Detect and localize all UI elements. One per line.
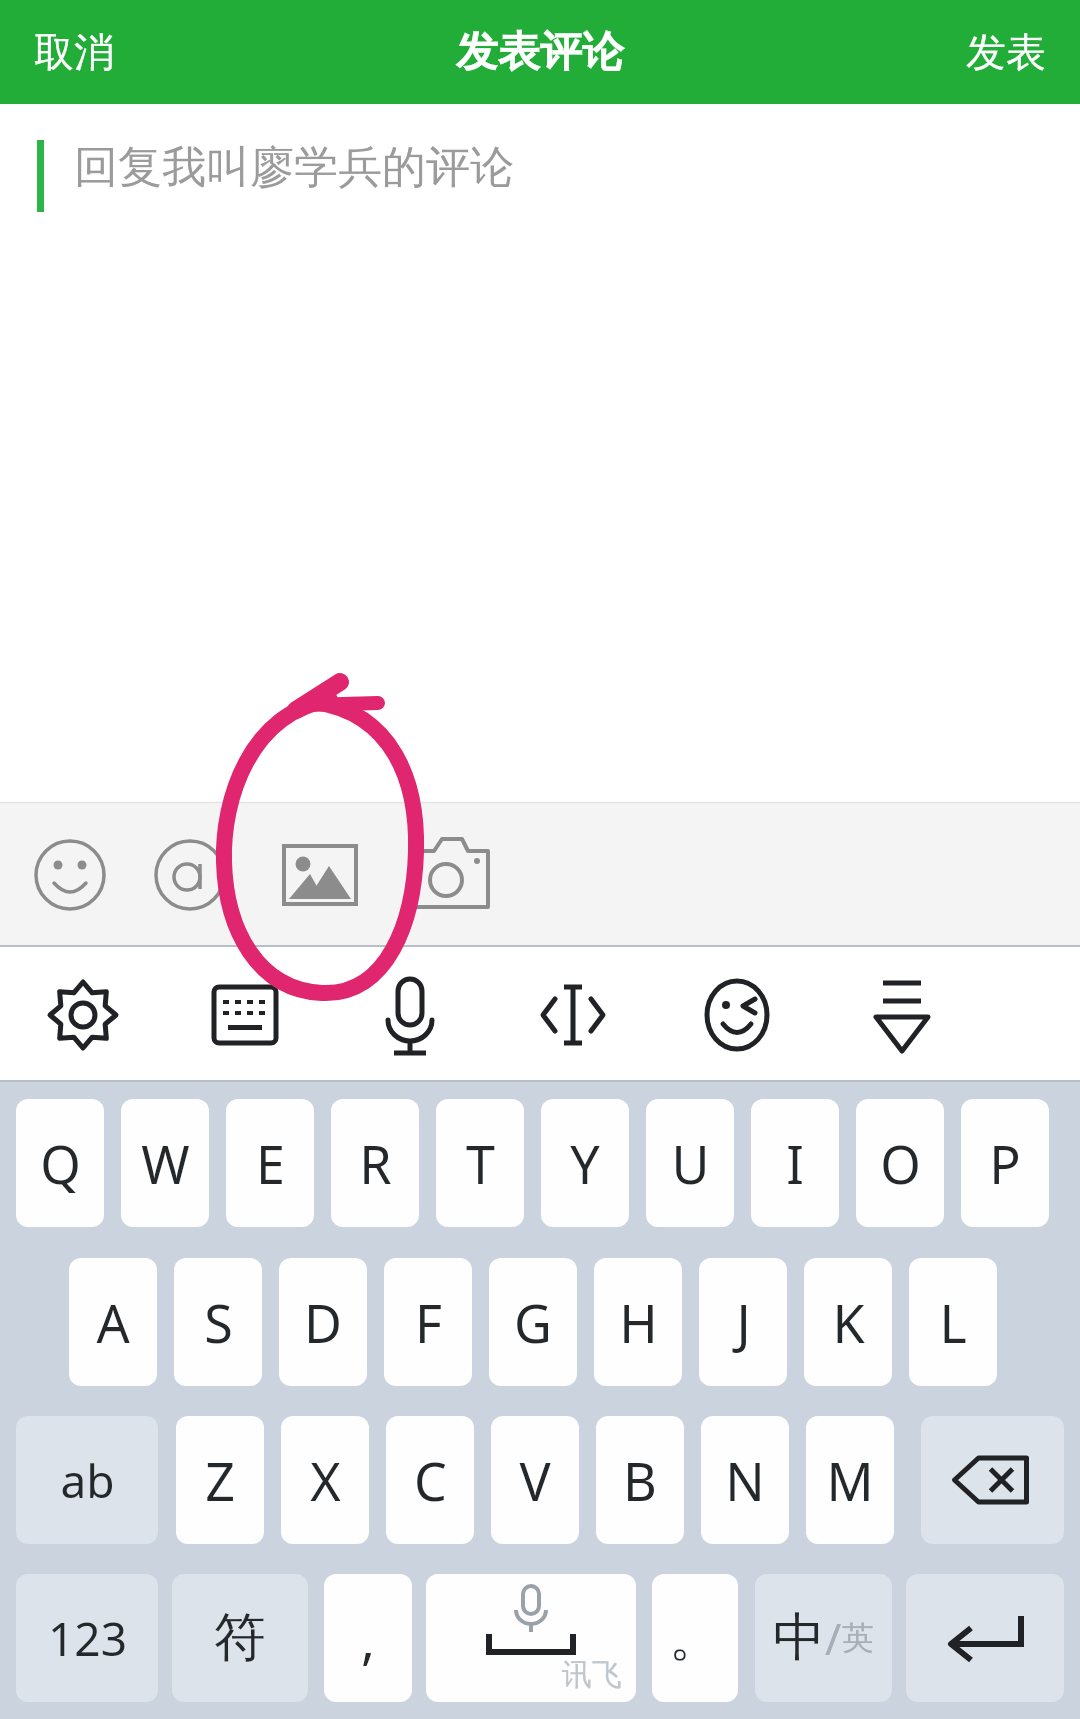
staticText: 英 [842,1618,874,1658]
staticText: R [359,1128,392,1199]
button[interactable]: Voice input [355,960,465,1070]
button[interactable]: Add image [268,823,372,927]
button[interactable]: W [121,1099,209,1227]
button[interactable]: 。 [652,1574,738,1702]
staticText: M [826,1445,874,1516]
staticText: V [519,1445,551,1516]
staticText: E [256,1128,285,1199]
staticText: Q [40,1128,81,1199]
staticText: 中 [773,1605,825,1671]
button[interactable]: F [384,1258,472,1386]
staticText: 123 [48,1607,127,1670]
button[interactable]: Emoji [18,823,122,927]
button[interactable]: H [594,1258,682,1386]
staticText: A [96,1287,130,1358]
button[interactable]: Enter [906,1574,1064,1702]
staticText: Z [205,1445,235,1516]
button[interactable]: Chinese English toggle [755,1574,892,1702]
staticText: , [361,1603,375,1674]
staticText: 取消 [34,27,114,77]
staticText: 发表评论 [456,26,624,79]
staticText: O [880,1128,921,1199]
button[interactable]: U [646,1099,734,1227]
staticText: 符 [214,1605,266,1671]
staticText: H [619,1287,658,1358]
staticText: J [736,1287,751,1358]
button[interactable]: 回复我叫廖学兵的评论 [0,104,1080,264]
button[interactable]: K [804,1258,892,1386]
button[interactable]: L [909,1258,997,1386]
button[interactable]: V [491,1416,579,1544]
button[interactable]: T [436,1099,524,1227]
button[interactable]: P [961,1099,1049,1227]
staticText: I [786,1128,804,1199]
staticText: C [414,1445,447,1516]
button[interactable]: 123 [16,1574,158,1702]
staticText: S [204,1287,233,1358]
button[interactable]: Q [16,1099,104,1227]
staticText: F [415,1287,442,1358]
staticText: L [939,1287,967,1358]
button[interactable]: I [751,1099,839,1227]
staticText: N [725,1445,765,1516]
button[interactable]: , [324,1574,412,1702]
button[interactable]: Z [176,1416,264,1544]
button[interactable]: D [279,1258,367,1386]
staticText: 发表 [966,27,1046,77]
staticText: P [989,1128,1021,1199]
button[interactable]: O [856,1099,944,1227]
button[interactable]: Space [426,1574,636,1702]
staticText: U [671,1128,710,1199]
button[interactable]: Camera [398,823,502,927]
button[interactable]: C [386,1416,474,1544]
button[interactable]: X [281,1416,369,1544]
staticText: T [466,1128,495,1199]
button[interactable]: G [489,1258,577,1386]
button[interactable]: 发表 [942,13,1070,91]
button[interactable]: Backspace [921,1416,1064,1544]
button[interactable]: A [69,1258,157,1386]
staticText: W [141,1128,190,1199]
staticText: 讯飞 [562,1656,622,1694]
staticText: X [310,1445,341,1516]
staticText: 。 [669,1605,721,1671]
staticText: Y [570,1128,600,1199]
button[interactable]: Settings [28,960,138,1070]
button[interactable]: N [701,1416,789,1544]
staticText: K [832,1287,865,1358]
button[interactable]: Hide keyboard [847,960,957,1070]
button[interactable]: J [699,1258,787,1386]
staticText: G [514,1287,552,1358]
button[interactable]: R [331,1099,419,1227]
button[interactable]: Mention [138,823,242,927]
button[interactable]: M [806,1416,894,1544]
staticText: ab [60,1449,115,1512]
staticText: B [623,1445,657,1516]
button[interactable]: S [174,1258,262,1386]
staticText: D [304,1287,342,1358]
button[interactable]: Keyboard layout [190,960,300,1070]
button[interactable]: Y [541,1099,629,1227]
button[interactable]: 符 [172,1574,308,1702]
button[interactable]: B [596,1416,684,1544]
staticText: 回复我叫廖学兵的评论 [74,140,514,195]
button[interactable]: 取消 [10,13,138,91]
staticText: / [825,1608,842,1668]
button[interactable]: Emoji [682,960,792,1070]
button[interactable]: ab [16,1416,158,1544]
button[interactable]: Cursor [518,960,628,1070]
button[interactable]: E [226,1099,314,1227]
